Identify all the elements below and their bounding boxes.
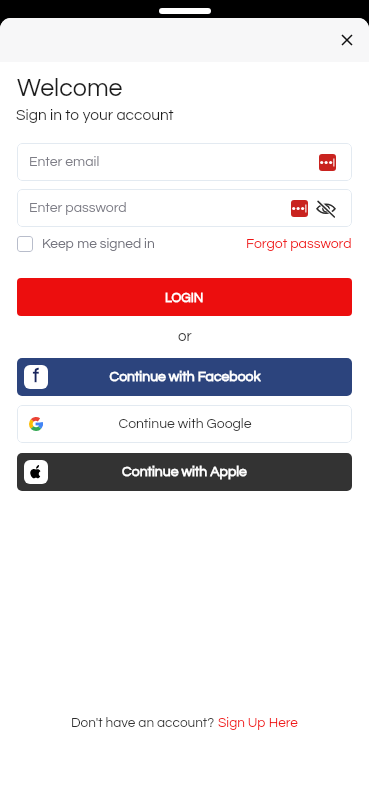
button[interactable]: Close [331, 24, 363, 56]
button[interactable]: f [17, 358, 352, 396]
staticText: Sign in to your account [16, 107, 174, 123]
button[interactable]: Keep me signed in [17, 236, 155, 252]
button[interactable]: Enter password [17, 189, 352, 227]
staticText: Continue with Google [118, 417, 252, 431]
staticText: Don't have an account? [71, 716, 218, 730]
staticText: Continue with Apple [122, 465, 247, 479]
button[interactable]: Autofill password [291, 200, 308, 217]
button[interactable]: LOGIN [17, 278, 352, 316]
staticText: Continue with Facebook [109, 370, 261, 384]
staticText: Enter password [29, 201, 127, 215]
staticText: f [33, 366, 39, 386]
staticText: or [178, 329, 192, 344]
button[interactable]: Continue with Google [17, 405, 352, 443]
button[interactable]: Sign Up Here [218, 716, 298, 730]
button[interactable]: Show password [316, 198, 336, 218]
button[interactable]: Forgot password [246, 237, 352, 251]
button[interactable]: Autofill password [319, 154, 336, 171]
button[interactable]: Continue with Apple [17, 453, 352, 491]
staticText: Enter email [29, 155, 100, 169]
button[interactable]: Enter email [17, 143, 352, 181]
staticText: LOGIN [165, 291, 204, 304]
staticText: Welcome [17, 75, 123, 101]
staticText: Keep me signed in [42, 237, 155, 251]
